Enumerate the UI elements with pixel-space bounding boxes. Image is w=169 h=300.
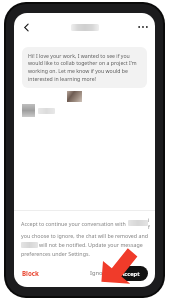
button[interactable]: Accept — [112, 266, 148, 281]
staticText: Block — [22, 269, 39, 277]
staticText: will not be notified. Update your messag… — [39, 241, 143, 248]
button[interactable]: Ignore — [89, 267, 110, 279]
button[interactable]: More options — [133, 17, 153, 37]
staticText: Accept — [120, 270, 140, 278]
staticText: Hi! I love your work, I wanted to see if… — [28, 52, 141, 83]
staticText: you choose to ignore, the chat will be r… — [21, 232, 148, 239]
staticText: preferences under Settings. — [21, 250, 90, 257]
staticText: Accept to continue your conversation wit… — [21, 220, 126, 227]
staticText: Ignore — [90, 269, 109, 277]
button[interactable]: Back — [16, 17, 36, 37]
button[interactable]: Hi! I love your work, I wanted to see if… — [22, 47, 147, 88]
button[interactable]: Block — [21, 267, 40, 279]
